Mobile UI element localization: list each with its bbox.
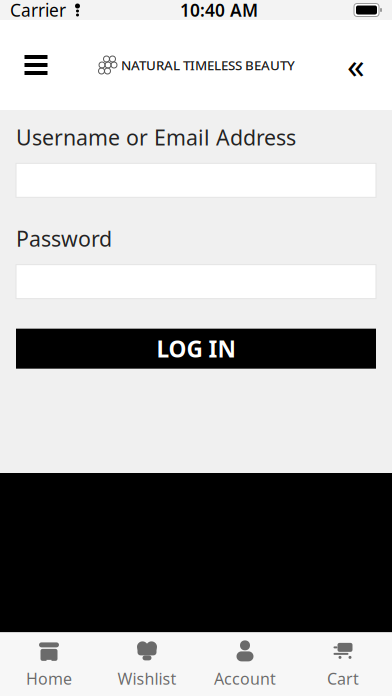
staticText: Wishlist xyxy=(117,668,176,689)
staticText: 10:40 AM xyxy=(180,0,258,21)
staticText: Password xyxy=(16,224,112,253)
button[interactable]: Back xyxy=(328,35,384,95)
staticText: Home xyxy=(26,668,72,689)
button[interactable]: LOG IN xyxy=(16,329,376,369)
staticText: Account xyxy=(214,668,276,689)
button[interactable]: Menu xyxy=(8,35,64,95)
button[interactable]: Home xyxy=(0,633,98,695)
staticText: Carrier xyxy=(10,0,66,21)
staticText: Cart xyxy=(327,668,359,689)
button[interactable]: Wishlist xyxy=(98,633,196,695)
staticText: « xyxy=(347,42,365,88)
button[interactable]: Cart xyxy=(294,633,392,695)
staticText: LOG IN xyxy=(156,334,235,364)
staticText: NATURAL TIMELESS BEAUTY xyxy=(121,56,295,74)
staticText: Username or Email Address xyxy=(16,123,296,151)
button[interactable]: Account xyxy=(196,633,294,695)
